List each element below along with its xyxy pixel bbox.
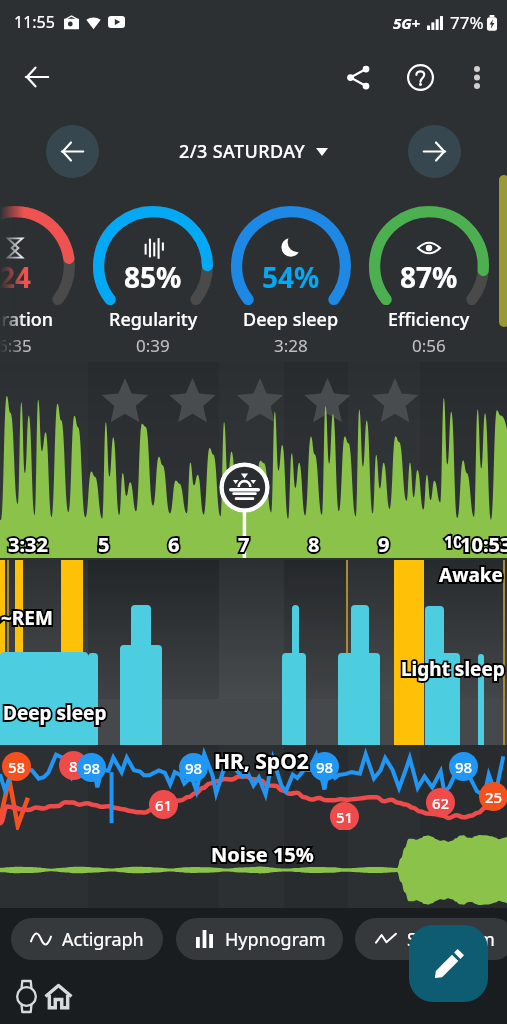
staticText: Actigraph	[62, 927, 144, 952]
staticText: Noise 15%	[211, 841, 314, 868]
staticText: 10	[444, 531, 463, 553]
staticText: 98	[185, 758, 203, 778]
staticText: 5G+	[393, 13, 421, 33]
staticText: 85%	[124, 258, 182, 296]
staticText: Light sleep	[401, 656, 505, 682]
staticText: 8	[308, 531, 320, 558]
staticText: 5	[98, 531, 110, 558]
button[interactable]: 2/3 SATURDAY	[171, 133, 336, 170]
staticText: 98	[316, 757, 334, 777]
button[interactable]: Previous day	[46, 125, 99, 178]
staticText: 54%	[262, 258, 320, 296]
staticText: 8	[308, 531, 320, 558]
button[interactable]: Back	[13, 53, 61, 101]
staticText: Efficiency	[388, 307, 470, 332]
staticText: 98	[83, 758, 101, 778]
staticText: 7	[238, 531, 250, 558]
staticText: 7	[238, 531, 250, 558]
staticText: 9	[378, 531, 390, 558]
staticText: 25	[485, 787, 503, 807]
staticText: 6:35	[0, 334, 32, 357]
staticText: HR, SpO2	[214, 747, 309, 776]
staticText: Deep sleep	[3, 700, 107, 726]
staticText: ~REM	[1, 605, 53, 631]
staticText: HR, SpO2	[214, 747, 309, 776]
staticText: 61	[155, 795, 173, 815]
staticText: 10:53	[460, 531, 507, 558]
staticText: Regularity	[109, 307, 198, 332]
staticText: 3:32	[8, 531, 48, 558]
button[interactable]: Edit	[409, 925, 488, 1002]
staticText: 5	[98, 531, 110, 558]
staticText: 6	[168, 531, 180, 558]
staticText: 9	[378, 531, 390, 558]
button[interactable]: Help	[396, 53, 444, 101]
staticText: 51	[336, 807, 354, 827]
staticText: 0:56	[412, 334, 446, 357]
staticText: Awake	[439, 562, 503, 588]
staticText: 2/3 SATURDAY	[179, 139, 306, 164]
staticText: 0:39	[136, 334, 170, 357]
staticText: 3:32	[8, 531, 48, 558]
staticText: Deep sleep	[3, 700, 107, 726]
button[interactable]: Alarm	[219, 462, 270, 513]
staticText: Light sleep	[401, 656, 505, 682]
button[interactable]: Actigraph	[11, 918, 163, 960]
staticText: Awake	[439, 562, 503, 588]
staticText: 98	[455, 757, 473, 777]
staticText: Deep sleep	[243, 307, 339, 332]
staticText: 10	[444, 531, 463, 553]
staticText: 77%	[450, 11, 484, 34]
button[interactable]: Share	[334, 53, 382, 101]
staticText: 11:55	[14, 11, 55, 33]
staticText: 62	[432, 793, 450, 813]
staticText: Hypnogram	[225, 927, 326, 952]
staticText: 6	[168, 531, 180, 558]
staticText: Sonogram	[407, 927, 495, 952]
staticText: 10:53	[460, 531, 507, 558]
staticText: Noise 15%	[211, 841, 314, 868]
staticText: 3:28	[274, 334, 308, 357]
staticText: 24	[0, 258, 32, 296]
staticText: 8	[69, 756, 78, 776]
staticText: ~REM	[1, 605, 53, 631]
staticText: 87%	[400, 258, 458, 296]
button[interactable]: More options	[455, 55, 499, 99]
button[interactable]: Next day	[408, 125, 461, 178]
staticText: Duration	[0, 307, 54, 332]
staticText: 58	[8, 757, 26, 777]
button[interactable]: Sonogram	[355, 918, 507, 960]
button[interactable]: Watch	[5, 975, 48, 1018]
button[interactable]: Home	[37, 975, 80, 1018]
button[interactable]: Hypnogram	[176, 918, 343, 960]
